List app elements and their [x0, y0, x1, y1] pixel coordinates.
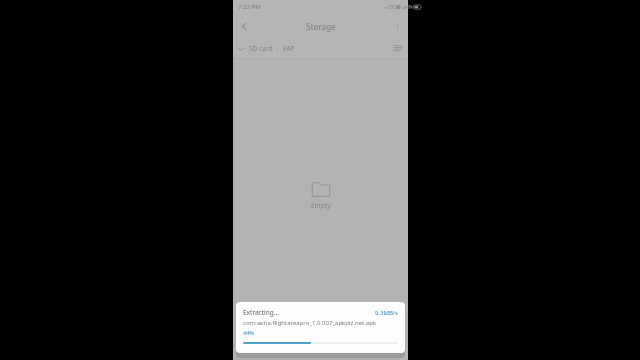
button[interactable]: SD card	[237, 44, 295, 53]
staticText: 7:22 PM	[238, 3, 261, 11]
staticText: Storage	[306, 21, 336, 32]
staticText: Empty	[311, 201, 331, 210]
staticText: com.aeria.flightareapro_1.0.007_apkplz.n…	[243, 319, 377, 327]
button[interactable]: Extracting...	[236, 302, 405, 353]
staticText: SD card	[249, 44, 273, 53]
staticText: /	[273, 44, 283, 53]
button[interactable]: Back	[233, 15, 255, 37]
staticText: 44%	[243, 329, 254, 336]
button[interactable]: Sort	[388, 38, 408, 58]
staticText: FAP	[283, 44, 295, 53]
staticText: 9.3MB/s	[375, 309, 398, 317]
staticText: Extracting...	[243, 308, 279, 317]
